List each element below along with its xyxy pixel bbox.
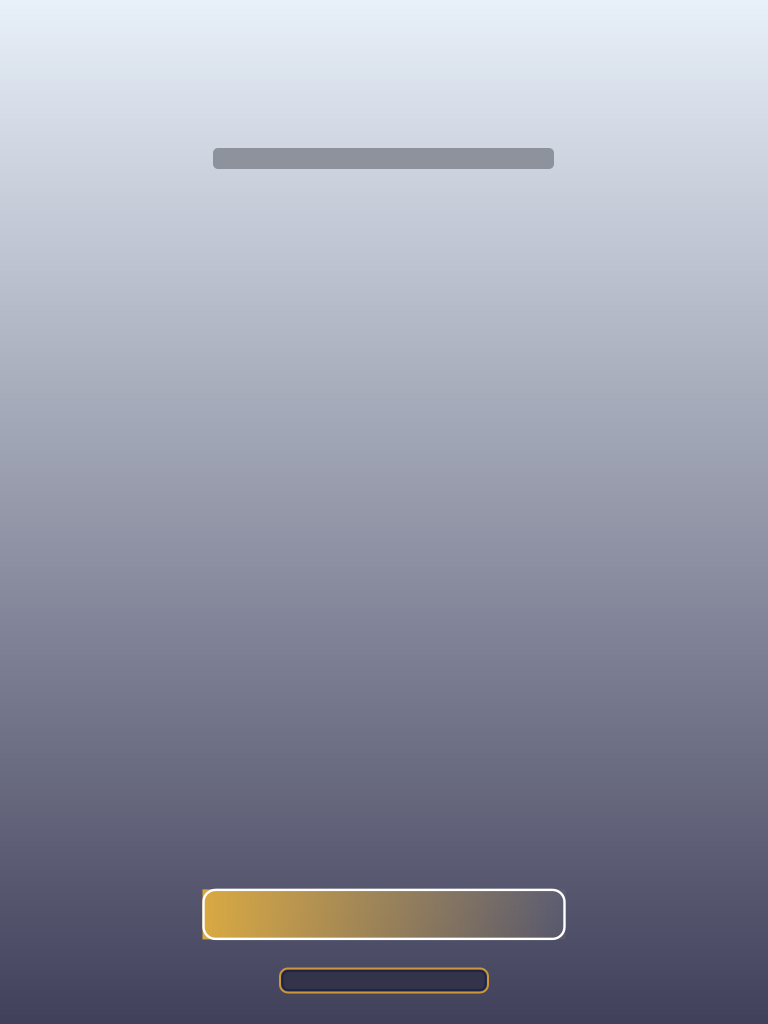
button[interactable]: Continue — [280, 968, 488, 992]
button[interactable]: Loading progress — [202, 889, 565, 939]
